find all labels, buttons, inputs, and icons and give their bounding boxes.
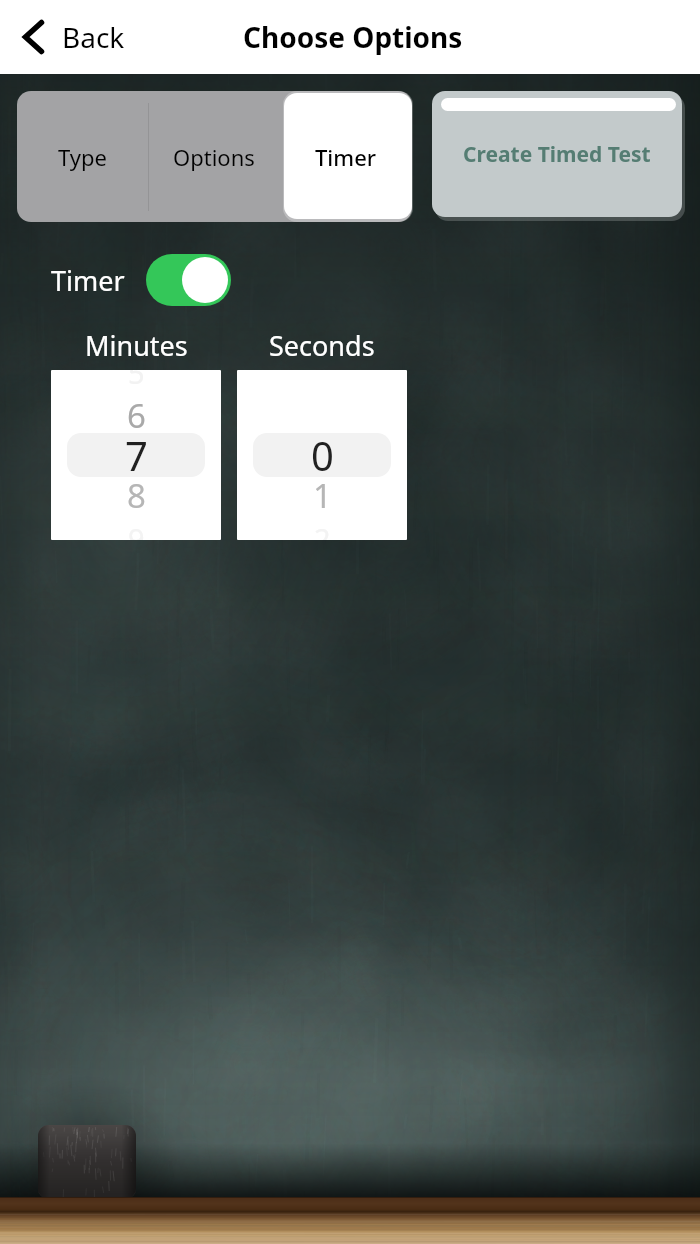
staticText: Options: [173, 142, 255, 172]
staticText: Seconds: [269, 327, 375, 364]
staticText: 5: [128, 370, 145, 392]
staticText: Timer: [51, 262, 125, 299]
staticText: Minutes: [85, 327, 188, 364]
staticText: 6: [127, 393, 146, 438]
staticText: Create Timed Test: [463, 140, 651, 169]
button[interactable]: Type: [17, 91, 148, 222]
staticText: 8: [127, 473, 146, 518]
button[interactable]: Options: [148, 91, 280, 222]
button[interactable]: Create Timed Test: [432, 91, 682, 217]
other: Back: [23, 20, 44, 54]
button[interactable]: Timer toggle: [146, 254, 231, 306]
staticText: Type: [58, 142, 107, 172]
staticText: Timer: [315, 142, 377, 172]
staticText: 1: [313, 473, 332, 518]
staticText: 0: [311, 428, 334, 482]
button[interactable]: Timer: [280, 91, 412, 222]
button[interactable]: Back: [0, 8, 139, 66]
button[interactable]: 5: [51, 370, 221, 540]
staticText: Choose Options: [243, 18, 463, 56]
staticText: 7: [125, 428, 148, 482]
staticText: 2: [314, 519, 331, 540]
staticText: 9: [128, 519, 145, 540]
button[interactable]: 0: [237, 370, 407, 540]
staticText: Back: [62, 18, 125, 56]
